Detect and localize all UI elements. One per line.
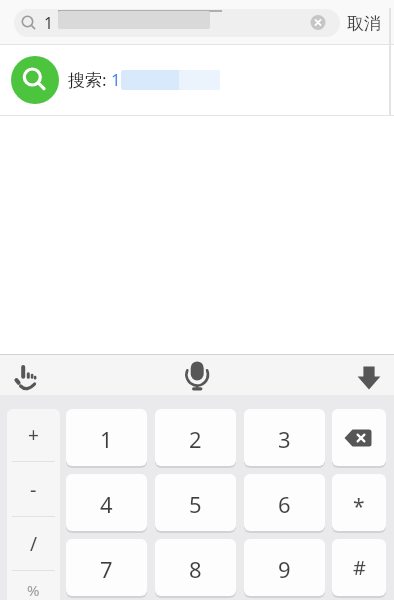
- staticText: +: [28, 422, 39, 448]
- staticText: %: [27, 580, 40, 600]
- staticText: 3: [278, 424, 291, 454]
- button[interactable]: 2: [155, 409, 236, 466]
- button[interactable]: 6: [244, 474, 325, 531]
- button[interactable]: [332, 409, 386, 466]
- button[interactable]: [183, 356, 213, 392]
- button[interactable]: +: [7, 409, 60, 461]
- staticText: 取消: [347, 13, 381, 34]
- button[interactable]: 8: [155, 539, 236, 596]
- staticText: 1: [100, 424, 113, 454]
- staticText: 7: [100, 554, 113, 584]
- button[interactable]: %: [7, 571, 60, 600]
- button[interactable]: *: [332, 474, 386, 531]
- button[interactable]: 4: [66, 474, 147, 531]
- staticText: -: [30, 476, 37, 503]
- staticText: #: [353, 554, 366, 581]
- button[interactable]: 取消: [342, 8, 386, 38]
- button[interactable]: 7: [66, 539, 147, 596]
- staticText: 9: [278, 554, 291, 584]
- button[interactable]: [310, 15, 326, 31]
- staticText: 2: [189, 424, 202, 454]
- staticText: 5: [189, 489, 202, 519]
- staticText: /: [30, 531, 38, 557]
- button[interactable]: 9: [244, 539, 325, 596]
- button[interactable]: [353, 358, 385, 392]
- button[interactable]: /: [7, 517, 60, 570]
- staticText: 6: [278, 489, 291, 519]
- staticText: 8: [189, 554, 202, 584]
- button[interactable]: -: [7, 462, 60, 516]
- button[interactable]: 搜索:: [0, 45, 394, 115]
- button[interactable]: 1: [66, 409, 147, 466]
- button[interactable]: [14, 9, 340, 37]
- staticText: 1: [44, 12, 54, 34]
- button[interactable]: 5: [155, 474, 236, 531]
- button[interactable]: #: [332, 539, 386, 596]
- button[interactable]: [12, 360, 40, 390]
- button[interactable]: 3: [244, 409, 325, 466]
- staticText: 4: [100, 489, 113, 519]
- staticText: *: [353, 492, 365, 521]
- staticText: 1: [111, 68, 121, 91]
- staticText: 搜索:: [68, 68, 111, 91]
